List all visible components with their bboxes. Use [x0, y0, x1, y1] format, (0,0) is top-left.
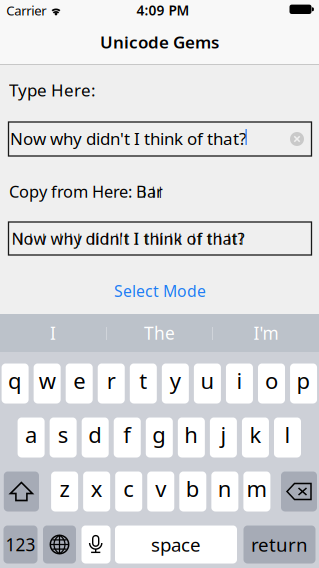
staticText: Now why didn't I think of that? — [10, 127, 246, 150]
button[interactable]: I — [0, 317, 106, 349]
button[interactable]: b — [179, 471, 206, 511]
staticText: m — [246, 473, 267, 503]
button[interactable]: w — [34, 363, 61, 403]
staticText: 123 — [5, 533, 35, 556]
button[interactable]: q — [2, 363, 29, 403]
button[interactable]: x — [83, 471, 110, 511]
button[interactable]: r — [98, 363, 125, 403]
staticText: x — [91, 473, 103, 503]
staticText: r — [107, 365, 116, 395]
staticText: j — [220, 419, 226, 449]
button[interactable]: y — [162, 363, 189, 403]
button[interactable]: m — [243, 471, 270, 511]
button[interactable]: Shift — [4, 471, 39, 511]
staticText: Select Mode — [114, 280, 206, 302]
button[interactable]: i — [226, 363, 253, 403]
staticText: p — [297, 365, 311, 395]
staticText: g — [152, 419, 166, 449]
staticText: v — [155, 473, 166, 503]
staticText: z — [60, 473, 70, 503]
staticText: h — [184, 419, 198, 449]
staticText: w — [39, 365, 56, 395]
staticText: Copy from Here: B⃒a⃒r⃒ — [9, 180, 163, 203]
button[interactable]: Select Mode — [90, 281, 230, 301]
button[interactable]: o — [258, 363, 285, 403]
button[interactable]: space — [115, 525, 237, 563]
staticText: Carrier — [6, 2, 46, 19]
staticText: a — [25, 419, 37, 449]
button[interactable]: j — [210, 417, 237, 457]
button[interactable]: s — [50, 417, 77, 457]
button[interactable]: k — [242, 417, 269, 457]
staticText: space — [151, 532, 201, 557]
button[interactable]: I'm — [213, 317, 319, 349]
button[interactable]: h — [178, 417, 205, 457]
button[interactable]: The — [106, 317, 213, 349]
staticText: s — [58, 419, 69, 449]
staticText: N⃒o⃒w⃒ w⃒h⃒y⃒ d⃒i⃒d⃒n⃒'⃒t⃒ I⃒ t⃒h⃒i⃒n⃒k⃒… — [11, 227, 244, 250]
staticText: q — [8, 365, 22, 395]
button[interactable]: g — [146, 417, 173, 457]
button[interactable]: u — [194, 363, 221, 403]
button[interactable]: e — [66, 363, 93, 403]
staticText: Type Here: — [9, 78, 96, 102]
staticText: return — [251, 532, 308, 557]
button[interactable]: z — [51, 471, 78, 511]
staticText: y — [170, 365, 181, 395]
staticText: 4:09 PM — [136, 1, 189, 19]
button[interactable]: t — [130, 363, 157, 403]
button[interactable]: Clear text — [290, 132, 304, 146]
button[interactable]: 123 — [3, 525, 37, 563]
staticText: o — [265, 365, 278, 395]
button[interactable]: c — [115, 471, 142, 511]
staticText: k — [249, 419, 261, 449]
staticText: c — [123, 473, 134, 503]
staticText: Unicode Gems — [100, 30, 219, 54]
button[interactable]: d — [82, 417, 109, 457]
staticText: i — [236, 365, 242, 395]
staticText: l — [284, 419, 290, 449]
button[interactable]: a — [18, 417, 45, 457]
staticText: The — [144, 321, 175, 345]
button[interactable]: l — [274, 417, 301, 457]
button[interactable]: p — [290, 363, 317, 403]
staticText: f — [123, 419, 131, 449]
staticText: u — [200, 365, 214, 395]
button[interactable]: Dictation — [81, 525, 110, 563]
button[interactable]: Next keyboard — [43, 525, 76, 563]
button[interactable]: v — [147, 471, 174, 511]
button[interactable]: return — [243, 525, 315, 563]
staticText: t — [139, 365, 147, 395]
staticText: n — [218, 473, 232, 503]
staticText: b — [186, 473, 200, 503]
staticText: d — [88, 419, 102, 449]
button[interactable]: n — [211, 471, 238, 511]
staticText: I'm — [253, 321, 278, 345]
staticText: e — [73, 365, 85, 395]
button[interactable]: Delete — [281, 471, 317, 511]
button[interactable]: f — [114, 417, 141, 457]
staticText: I — [50, 321, 56, 345]
